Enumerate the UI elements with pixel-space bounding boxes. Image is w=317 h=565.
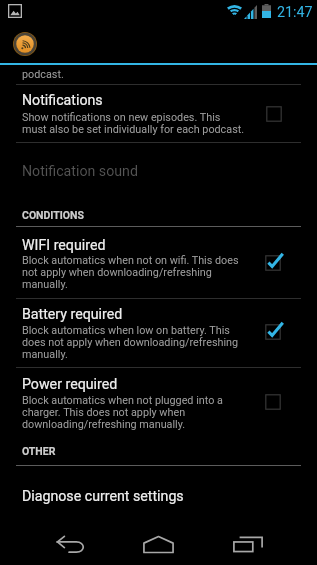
button[interactable] — [0, 227, 317, 297]
button[interactable]: Back — [46, 523, 94, 565]
staticText: podcast. — [22, 68, 64, 81]
staticText: Show notifications on new episodes. This… — [22, 111, 245, 136]
button[interactable]: Disabled, unchecked — [257, 97, 291, 131]
staticText: Block automatics when not on wifi. This … — [22, 254, 239, 291]
staticText: Block automatics when low on battery. Th… — [22, 324, 239, 361]
staticText: CONDITIONS — [22, 209, 84, 221]
staticText: 21:47 — [277, 4, 313, 21]
button[interactable] — [0, 85, 317, 142]
staticText: Diagnose current settings — [22, 488, 184, 505]
staticText: OTHER — [22, 445, 56, 457]
button[interactable] — [0, 65, 317, 84]
button[interactable] — [0, 299, 317, 366]
button[interactable] — [0, 143, 317, 190]
button[interactable] — [0, 466, 317, 512]
button[interactable]: Recent apps — [224, 523, 272, 565]
staticText: Battery required — [22, 306, 123, 323]
staticText: Notifications — [22, 92, 103, 109]
staticText: Block automatics when not plugged into a… — [22, 394, 223, 431]
button[interactable]: Enabled, checked — [256, 315, 290, 349]
staticText: Power required — [22, 376, 118, 393]
button[interactable]: Home — [134, 523, 182, 565]
staticText: WIFI required — [22, 237, 106, 254]
button[interactable]: Enabled, checked — [256, 246, 290, 280]
staticText: Notification sound — [22, 163, 138, 180]
button[interactable] — [0, 368, 317, 435]
button[interactable]: Navigate up — [8, 27, 41, 60]
button[interactable]: Disabled, unchecked — [256, 385, 290, 419]
